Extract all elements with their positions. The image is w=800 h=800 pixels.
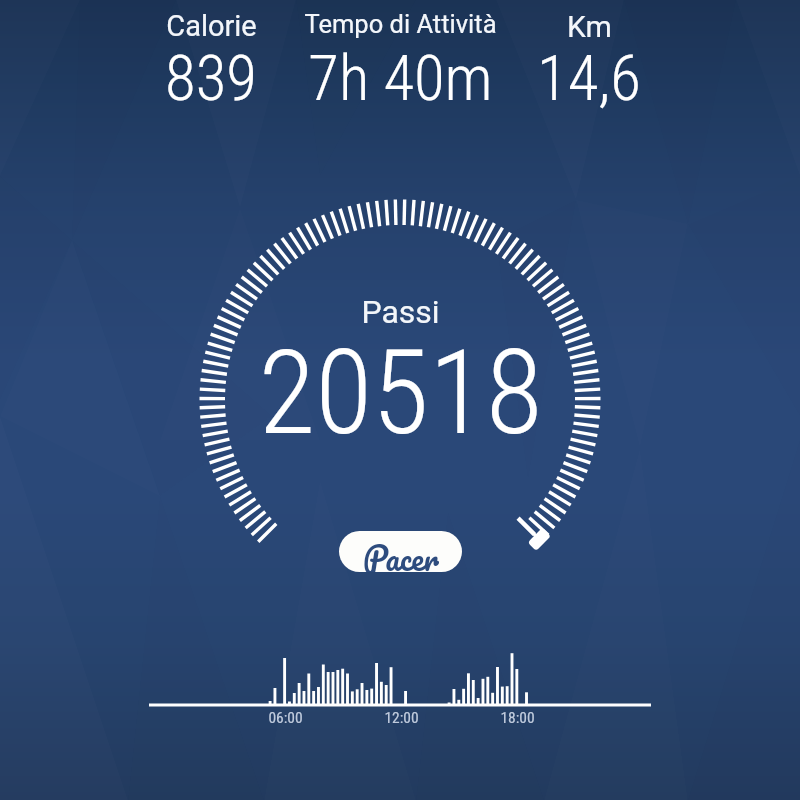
staticText: 20518 xyxy=(258,324,543,461)
button[interactable]: Tempo di Attività xyxy=(270,4,530,110)
staticText: Tempo di Attività xyxy=(304,9,497,39)
button[interactable]: Calorie xyxy=(81,4,341,110)
button[interactable]: Pacer logo xyxy=(339,531,462,572)
staticText: 06:00 xyxy=(268,709,303,727)
staticText: Calorie xyxy=(166,9,257,43)
staticText: 839 xyxy=(165,42,257,116)
staticText: Km xyxy=(567,9,612,44)
staticText: 14,6 xyxy=(537,42,641,116)
staticText: 18:00 xyxy=(500,709,535,727)
staticText: 7h 40m xyxy=(308,42,493,116)
staticText: 12:00 xyxy=(384,709,419,727)
staticText: Pacer xyxy=(363,531,439,572)
button[interactable]: Km xyxy=(459,4,719,110)
staticText: Passi xyxy=(361,293,440,331)
